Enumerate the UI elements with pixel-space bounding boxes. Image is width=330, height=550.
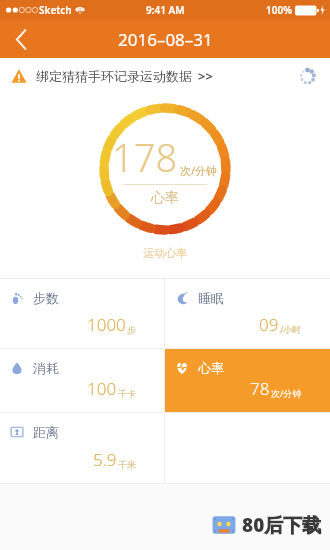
button[interactable]: 心率 xyxy=(165,349,330,412)
staticText: 09 xyxy=(259,313,279,336)
staticText: 千卡 xyxy=(118,388,136,399)
staticText: 心率 xyxy=(151,189,179,207)
staticText: 次/分钟 xyxy=(271,387,302,399)
staticText: 千米 xyxy=(118,459,136,470)
staticText: 心率 xyxy=(198,360,224,376)
button[interactable]: Back xyxy=(0,20,42,58)
staticText: 绑定猜猜手环记录运动数据 xyxy=(36,68,192,84)
staticText: 1000 xyxy=(87,313,126,336)
staticText: 步 xyxy=(127,324,136,335)
staticText: Sketch xyxy=(39,3,72,17)
button[interactable]: 距离 xyxy=(0,413,164,483)
button[interactable]: 睡眠 xyxy=(165,279,330,348)
staticText: 9:41 AM xyxy=(146,3,185,17)
staticText: 消耗 xyxy=(33,360,59,376)
button[interactable]: 步数 xyxy=(0,279,164,348)
staticText: 2016–08–31 xyxy=(118,28,213,51)
staticText: 睡眠 xyxy=(198,290,224,306)
button[interactable]: 消耗 xyxy=(0,349,164,412)
staticText: 80后下载 xyxy=(242,512,322,538)
staticText: 178 xyxy=(112,131,178,183)
staticText: >> xyxy=(198,67,213,85)
staticText: 78 xyxy=(250,377,270,400)
staticText: 100 xyxy=(87,377,117,400)
staticText: 次/分钟 xyxy=(180,163,218,178)
staticText: 100% xyxy=(266,3,292,17)
staticText: 5.9 xyxy=(93,448,117,471)
staticText: 距离 xyxy=(33,424,59,440)
button[interactable]: 绑定猜猜手环记录运动数据 xyxy=(0,58,330,94)
staticText: 运动心率 xyxy=(143,246,187,260)
staticText: /小时 xyxy=(280,323,302,335)
staticText: 步数 xyxy=(33,290,59,306)
